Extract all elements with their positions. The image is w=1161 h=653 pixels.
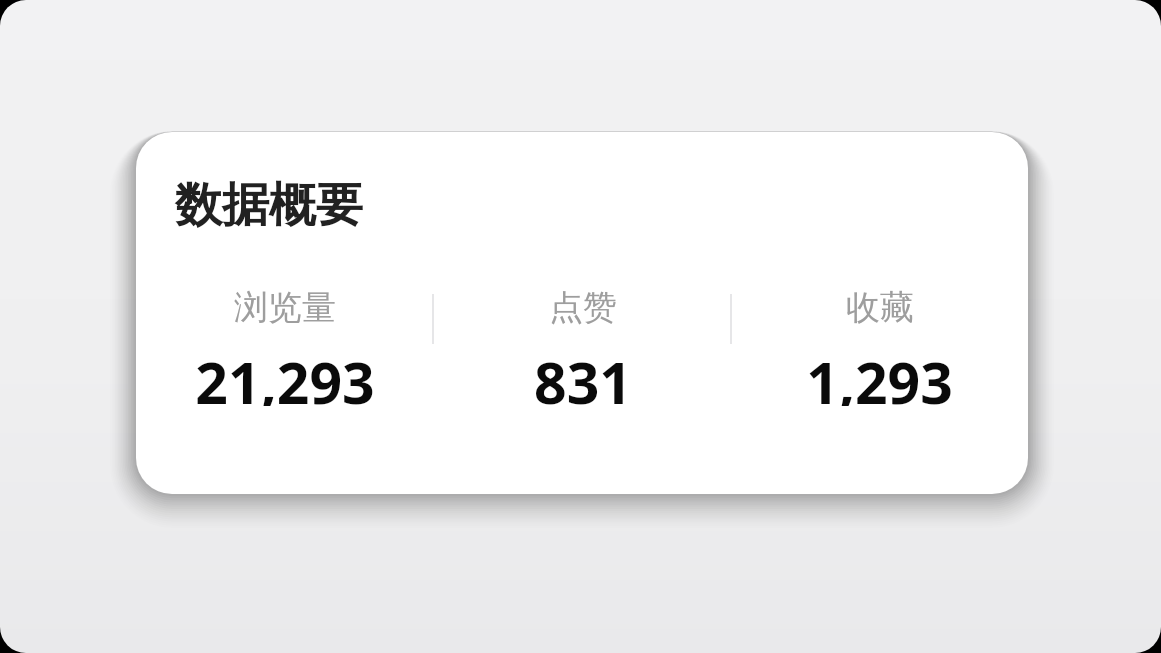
button[interactable]: 数据概要 xyxy=(136,132,1028,494)
staticText: 831 xyxy=(534,343,632,406)
staticText: 数据概要 xyxy=(175,176,363,235)
button[interactable]: 收藏 xyxy=(731,286,1028,406)
staticText: 浏览量 xyxy=(234,286,336,329)
staticText: 1,293 xyxy=(806,343,953,406)
staticText: 21,293 xyxy=(195,343,375,406)
staticText: 点赞 xyxy=(549,286,617,329)
button[interactable]: 浏览量 xyxy=(136,286,434,406)
button[interactable]: 点赞 xyxy=(434,286,731,406)
staticText: 收藏 xyxy=(846,286,914,329)
